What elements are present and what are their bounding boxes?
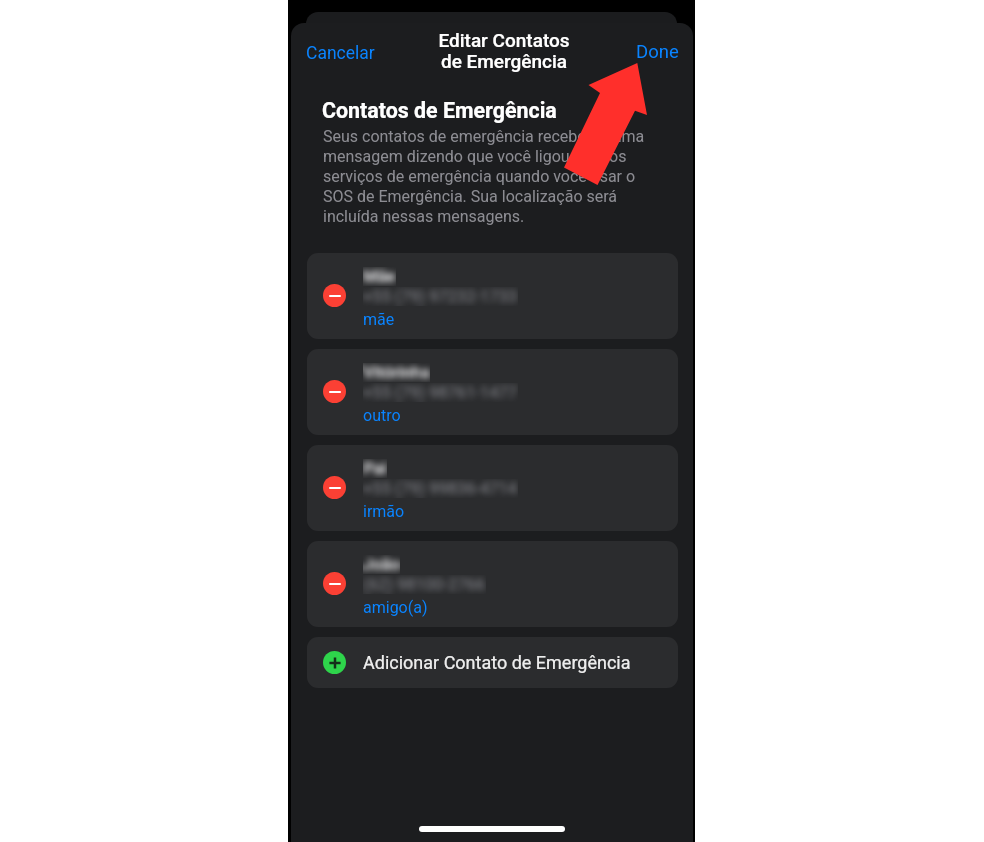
staticText: +55 (79) 97232-1733 [363, 287, 518, 306]
button[interactable]: Remover contato [323, 476, 346, 499]
button[interactable]: Remover contato [323, 572, 346, 595]
staticText: amigo(a) [363, 598, 428, 617]
button[interactable]: Remover contato [323, 284, 346, 307]
staticText: outro [363, 406, 401, 425]
staticText: +55 (79) 99836-4714 [363, 479, 518, 498]
staticText: +55 (79) 98761-1477 [363, 383, 518, 402]
staticText: Editar Contatos de Emergência [420, 29, 588, 73]
staticText: irmão [363, 502, 405, 521]
button[interactable]: Remover contato [307, 541, 678, 627]
button[interactable]: Done [630, 37, 685, 67]
staticText: Done [636, 41, 679, 63]
staticText: Vitórinha [363, 363, 430, 382]
staticText: Contatos de Emergência [322, 98, 557, 123]
button[interactable]: Remover contato [307, 349, 678, 435]
staticText: Mãe [363, 267, 396, 286]
staticText: João [363, 555, 400, 574]
staticText: Adicionar Contato de Emergência [363, 652, 631, 673]
staticText: Cancelar [306, 43, 375, 64]
staticText: (62) 98100-2766 [363, 575, 486, 594]
button[interactable]: Remover contato [307, 445, 678, 531]
staticText: mãe [363, 310, 395, 329]
staticText: Seus contatos de emergência receberão um… [323, 127, 645, 226]
button[interactable]: Cancelar [300, 39, 381, 68]
staticText: Pai [363, 459, 387, 478]
button[interactable]: Remover contato [323, 380, 346, 403]
button[interactable]: Adicionar Contato de Emergência [307, 637, 678, 688]
button[interactable]: Remover contato [307, 253, 678, 339]
